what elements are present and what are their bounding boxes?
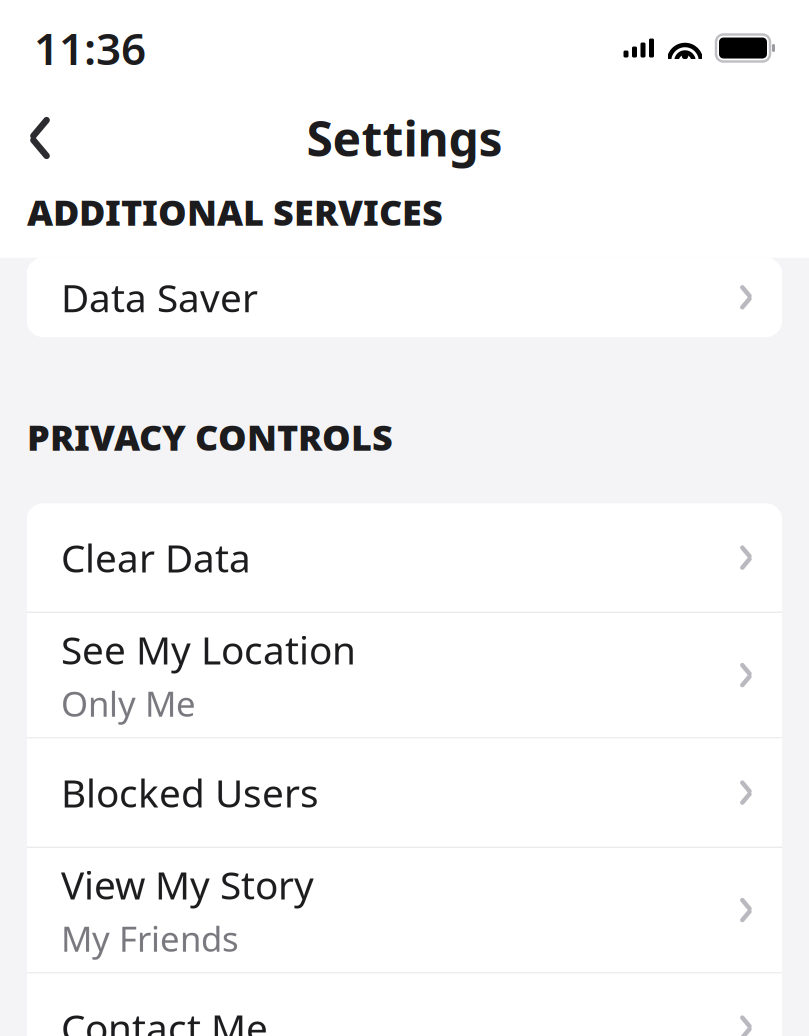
staticText: ADDITIONAL SERVICES xyxy=(27,188,443,236)
staticText: Clear Data xyxy=(61,532,251,583)
button[interactable]: Contact Me xyxy=(27,974,782,1036)
staticText: See My Location xyxy=(61,624,356,675)
staticText: View My Story xyxy=(61,859,314,910)
staticText: Settings xyxy=(306,106,502,170)
staticText: Only Me xyxy=(61,680,196,726)
staticText: My Friends xyxy=(61,915,239,961)
staticText: 11:36 xyxy=(34,19,146,77)
staticText: Data Saver xyxy=(61,272,258,323)
button[interactable]: View My Story xyxy=(27,848,782,974)
button[interactable]: See My Location xyxy=(27,613,782,739)
button[interactable]: Clear Data xyxy=(27,504,782,613)
button[interactable]: Back xyxy=(10,106,70,170)
staticText: PRIVACY CONTROLS xyxy=(27,413,393,461)
staticText: Contact Me xyxy=(61,1002,268,1036)
staticText: Blocked Users xyxy=(61,767,319,818)
button[interactable]: Data Saver xyxy=(27,258,782,337)
button[interactable]: Blocked Users xyxy=(27,739,782,848)
